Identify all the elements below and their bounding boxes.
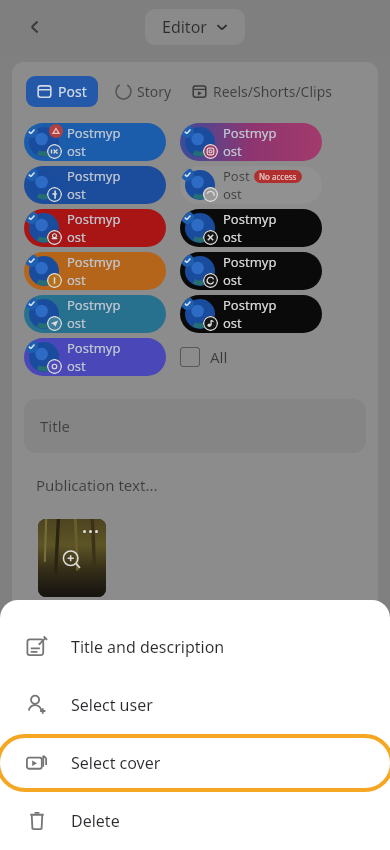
staticText: Postmyp (223, 124, 277, 142)
button[interactable]: Reels/Shorts/Clips (188, 76, 336, 107)
button[interactable]: Postmyp (180, 295, 322, 333)
button[interactable]: Story (112, 76, 176, 107)
staticText: ost (67, 271, 86, 289)
button[interactable]: Post (26, 76, 98, 107)
staticText: Story (137, 82, 172, 101)
staticText: ost (67, 142, 86, 160)
button[interactable]: Title and description (1, 618, 389, 676)
button[interactable]: Postmyp (180, 123, 322, 161)
button[interactable]: Postmyp (24, 338, 166, 376)
button[interactable]: Postmyp (24, 295, 166, 333)
staticText: Postmyp (223, 210, 277, 228)
button[interactable]: Post (180, 166, 322, 204)
staticText: Postmyp (67, 124, 121, 142)
staticText: Postmyp (67, 210, 121, 228)
button[interactable]: Postmyp (180, 209, 322, 247)
staticText: Delete (71, 810, 120, 832)
staticText: ost (67, 228, 86, 246)
button[interactable]: Postmyp (24, 252, 166, 290)
staticText: Select user (71, 694, 153, 716)
staticText: Select cover (71, 752, 161, 774)
button[interactable]: Back (18, 10, 52, 44)
staticText: ost (67, 185, 86, 203)
staticText: ost (223, 228, 242, 246)
staticText: Postmyp (67, 296, 121, 314)
staticText: Postmyp (67, 167, 121, 185)
staticText: Title (40, 416, 70, 436)
staticText: No access (259, 171, 297, 182)
staticText: ost (223, 314, 242, 332)
button[interactable]: Postmyp (24, 209, 166, 247)
staticText: Post (58, 82, 87, 101)
staticText: Reels/Shorts/Clips (213, 82, 332, 101)
button[interactable]: Delete (1, 792, 389, 850)
staticText: ost (223, 142, 242, 160)
staticText: Postmyp (223, 296, 277, 314)
staticText: Editor (162, 16, 207, 38)
button[interactable]: Select user (1, 676, 389, 734)
button[interactable]: Zoom (38, 519, 106, 597)
button[interactable]: Editor (145, 9, 245, 45)
staticText: ost (223, 271, 242, 289)
other: Zoom (61, 549, 83, 571)
staticText: Postmyp (223, 253, 277, 271)
button[interactable]: Title (24, 399, 366, 453)
staticText: ost (223, 185, 242, 203)
button[interactable]: Postmyp (24, 123, 166, 161)
staticText: Publication text... (36, 475, 158, 495)
staticText: Postmyp (67, 253, 121, 271)
staticText: ost (67, 314, 86, 332)
button[interactable]: All (180, 343, 236, 371)
staticText: Postmyp (67, 339, 121, 357)
button[interactable]: Postmyp (180, 252, 322, 290)
staticText: ost (67, 357, 86, 375)
staticText: All (210, 347, 228, 367)
staticText: Post (223, 167, 250, 185)
button[interactable]: Select cover (1, 734, 389, 792)
staticText: Title and description (71, 636, 225, 658)
button[interactable]: Postmyp (24, 166, 166, 204)
